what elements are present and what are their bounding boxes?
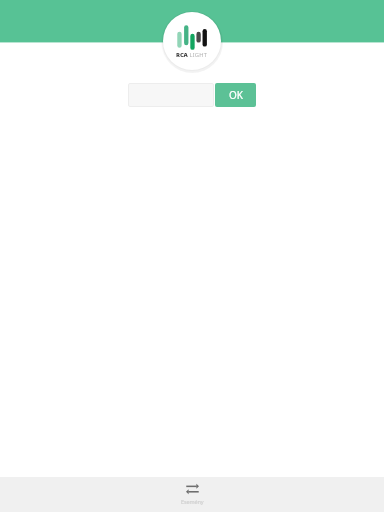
button[interactable]: Esemény <box>153 478 232 511</box>
other: Esemény <box>186 484 199 494</box>
other: RCA Light logó <box>177 25 207 50</box>
staticText: Esemény <box>181 498 204 505</box>
button[interactable]: OK <box>215 83 256 107</box>
staticText: OK <box>229 88 243 102</box>
button[interactable]: Kód <box>128 83 214 107</box>
staticText: RCA LIGHT <box>176 51 208 59</box>
